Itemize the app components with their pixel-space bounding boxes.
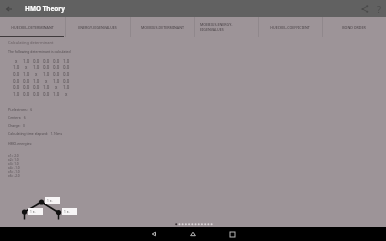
staticText: 0.0	[43, 64, 50, 69]
staticText: x2= 1.0	[8, 158, 19, 162]
staticText: HUECKEL-COEFFICIENT	[270, 25, 310, 30]
button[interactable]: Share	[358, 2, 372, 16]
staticText: 1.0	[53, 91, 60, 96]
staticText: x6= -2.0	[8, 174, 20, 178]
staticText: 1.0	[43, 84, 50, 89]
staticText: x	[35, 71, 38, 76]
staticText: 1.0	[63, 58, 70, 63]
staticText: 0.0	[23, 84, 30, 89]
staticText: x1= 2.0	[8, 154, 19, 158]
staticText: ?	[377, 3, 381, 15]
staticText: 1.0	[63, 84, 70, 89]
staticText: 1.0	[53, 78, 60, 83]
staticText: 0.0	[63, 78, 70, 83]
button[interactable]: Recents	[225, 227, 239, 241]
staticText: x	[65, 91, 68, 96]
staticText: HMO-energies:	[8, 141, 33, 146]
staticText: 1.0	[13, 91, 20, 96]
staticText: 0.0	[43, 91, 50, 96]
staticText: 0.0	[43, 58, 50, 63]
staticText: x4= -1.0	[8, 166, 20, 170]
staticText: HMO Theory	[25, 4, 65, 13]
staticText: 1 e-	[30, 210, 36, 214]
staticText: x	[45, 78, 48, 83]
staticText: HUECKEL-DETERMINANT	[11, 25, 54, 30]
staticText: x5= -1.0	[8, 170, 20, 174]
staticText: Calculating time elapsed: 1.16ms	[8, 131, 63, 136]
staticText: 1.0	[23, 71, 30, 76]
staticText: The following determinant is calculated	[8, 49, 71, 54]
staticText: 0.0	[53, 64, 60, 69]
staticText: 0.0	[53, 71, 60, 76]
staticText: 0.0	[63, 71, 70, 76]
staticText: 1.0	[33, 64, 40, 69]
staticText: 0.0	[13, 84, 20, 89]
button[interactable]: Back	[147, 227, 161, 241]
staticText: 1 e-	[47, 199, 53, 203]
staticText: 1.0	[23, 58, 30, 63]
staticText: x3= 1.0	[8, 162, 19, 166]
staticText: Pi-electrons: 6	[8, 107, 33, 112]
button[interactable]: Home	[186, 227, 200, 241]
button[interactable]: BOND ORDER	[322, 17, 386, 37]
staticText: x	[25, 64, 28, 69]
staticText: 1.0	[43, 71, 50, 76]
staticText: 0.0	[23, 78, 30, 83]
button[interactable]: HUECKEL-DETERMINANT	[0, 17, 65, 37]
staticText: 0.0	[33, 91, 40, 96]
button[interactable]: HUECKEL-COEFFICIENT	[258, 17, 322, 37]
staticText: 1.0	[33, 78, 40, 83]
button[interactable]: ENERGY-EIGENVALUES	[65, 17, 130, 37]
staticText: Centers: 6	[8, 115, 26, 120]
staticText: BOND ORDER	[342, 25, 366, 30]
staticText: 1 e-	[64, 210, 70, 214]
staticText: 0.0	[63, 64, 70, 69]
staticText: x	[15, 58, 18, 63]
staticText: 0.0	[13, 71, 20, 76]
staticText: 0.0	[33, 84, 40, 89]
staticText: ENERGY-EIGENVALUES	[78, 25, 117, 30]
staticText: 0.0	[13, 78, 20, 83]
staticText: 0.0	[53, 58, 60, 63]
staticText: Charge: 0	[8, 123, 25, 128]
staticText: Calculating determinant	[8, 40, 54, 45]
staticText: MOEBIUS-DETERMINANT	[141, 25, 184, 30]
staticText: 1.0	[13, 64, 20, 69]
button[interactable]: MOEBIUS-ENERGY- EIGENVALUES	[194, 17, 258, 37]
staticText: MOEBIUS-ENERGY- EIGENVALUES	[200, 22, 256, 32]
button[interactable]: MOEBIUS-DETERMINANT	[130, 17, 194, 37]
staticText: 0.0	[23, 91, 30, 96]
staticText: 0.0	[33, 58, 40, 63]
button[interactable]: Back	[2, 2, 15, 15]
staticText: x	[55, 84, 58, 89]
